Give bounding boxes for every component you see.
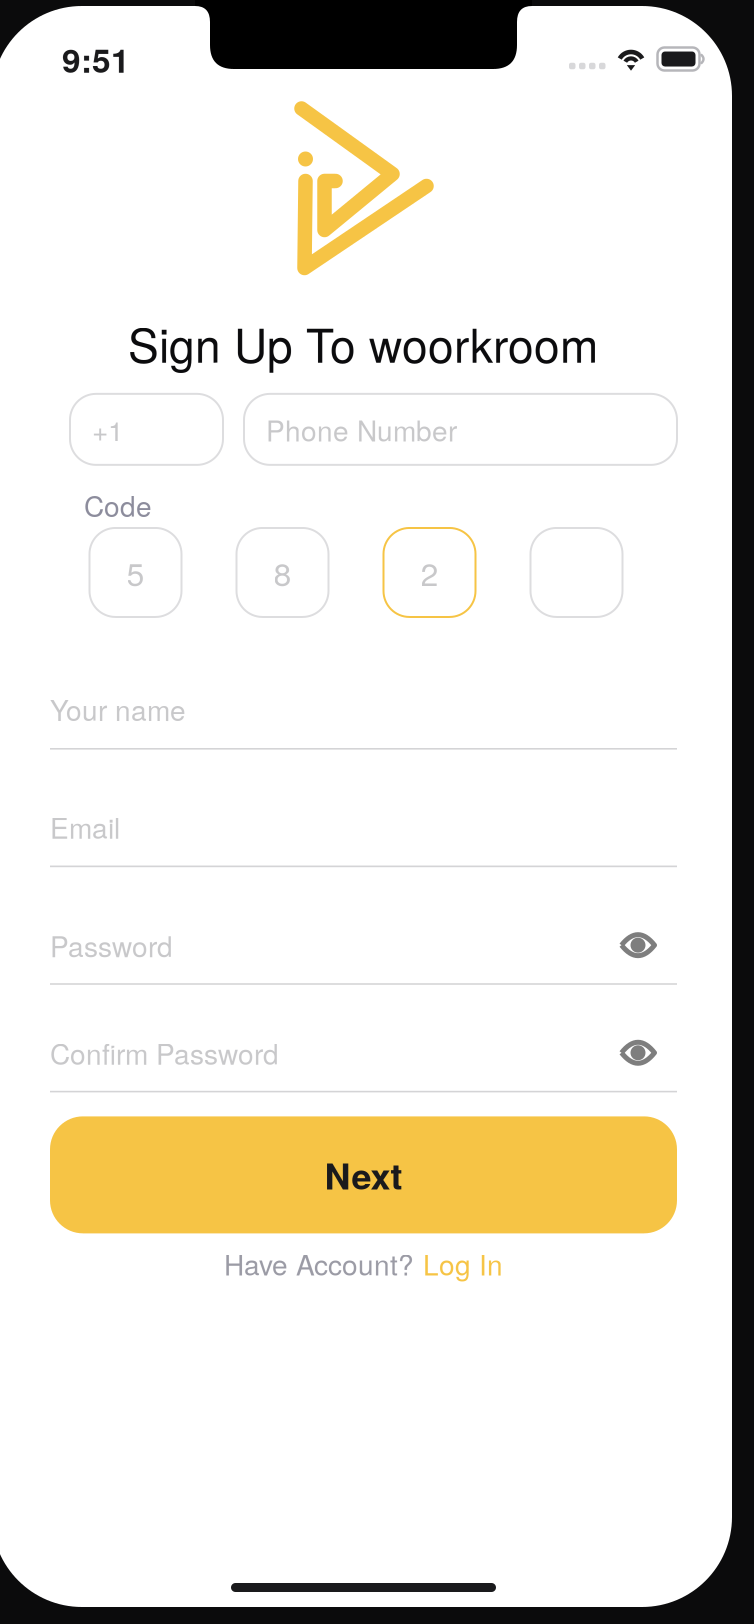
- button[interactable]: Next: [50, 1116, 677, 1233]
- staticText: +1: [92, 409, 124, 449]
- staticText: Have Account?: [224, 1243, 414, 1283]
- staticText: Sign Up To woorkroom: [128, 310, 598, 376]
- button[interactable]: Show Password: [619, 924, 677, 966]
- button[interactable]: Show Confirm Password: [619, 1032, 677, 1074]
- staticText: 9:51: [62, 35, 130, 83]
- staticText: Phone Number: [266, 409, 457, 449]
- button[interactable]: Have Account?: [224, 1237, 508, 1289]
- button[interactable]: Code digit 2: [383, 528, 475, 617]
- staticText: Next: [324, 1149, 402, 1201]
- staticText: Email: [50, 807, 120, 847]
- staticText: 2: [420, 550, 438, 595]
- staticText: 8: [273, 550, 291, 595]
- staticText: Password: [50, 925, 173, 965]
- button[interactable]: Code digit 5: [89, 528, 181, 617]
- staticText: 5: [126, 550, 144, 595]
- staticText: Confirm Password: [50, 1033, 279, 1073]
- button[interactable]: Code digit: [530, 528, 622, 617]
- staticText: Log In: [423, 1243, 503, 1283]
- button[interactable]: Code digit 8: [236, 528, 328, 617]
- staticText: Code: [84, 485, 152, 525]
- staticText: Your name: [50, 689, 186, 729]
